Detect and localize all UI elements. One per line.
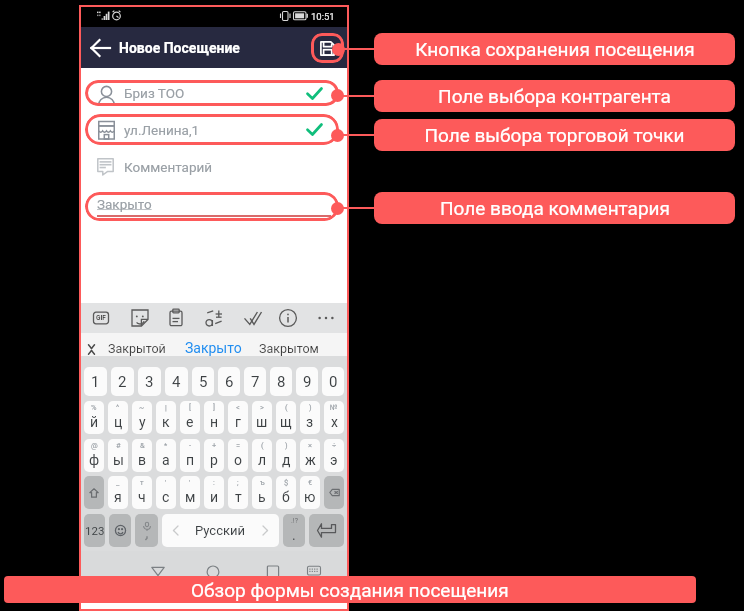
staticText: ь [258,489,266,505]
button[interactable]: Voice input [135,514,158,547]
button[interactable]: ~ [132,401,152,434]
staticText: л [258,452,267,468]
staticText: т [235,489,242,505]
button[interactable]: 7 [244,367,266,396]
button[interactable]: Home [206,566,220,580]
button[interactable]: .!? [283,514,305,547]
button[interactable]: Backspace [324,476,344,509]
staticText: 8 [277,373,286,391]
button[interactable]: More [316,308,336,328]
button[interactable]: ; [228,476,248,509]
staticText: Поле ввода комментария [440,197,670,219]
button[interactable]: Hide keyboard [307,566,321,580]
button[interactable]: Back [151,566,165,580]
button[interactable]: & [132,439,152,472]
staticText: ) [309,403,312,412]
button[interactable]: × [300,439,320,472]
button[interactable]: 3 [138,367,161,396]
button[interactable]: ) [300,401,320,434]
button[interactable]: 123 [84,514,105,547]
button[interactable]: > [252,401,272,434]
button[interactable]: ( [252,439,272,472]
button[interactable]: Spellcheck [243,308,263,328]
staticText: б [282,489,290,505]
button[interactable]: ' [156,476,176,509]
button[interactable]: _ [108,476,128,509]
staticText: ~ [139,403,145,412]
button[interactable]: Clipboard [166,308,186,328]
button[interactable]: Shift [84,476,104,509]
button[interactable]: ъ [252,476,272,509]
staticText: Закрыто [97,196,152,212]
button[interactable]: Комментарий [97,158,213,178]
button[interactable]: $ [276,476,296,509]
button[interactable]: Recents [266,566,280,580]
staticText: < [236,403,240,412]
button[interactable]: ÷ [324,439,344,472]
staticText: № [330,403,338,412]
button[interactable]: 1 [84,367,107,396]
staticText: ч [138,489,146,505]
button[interactable]: Закрыто [176,333,251,363]
staticText: д [282,452,291,468]
button[interactable]: ' [180,476,200,509]
button[interactable]: ^ [108,401,128,434]
button[interactable]: № [324,401,344,434]
button[interactable]: - [180,439,200,472]
button[interactable]: 2 [111,367,134,396]
button[interactable]: = [228,439,248,472]
staticText: т [140,478,144,487]
staticText: у [139,414,146,430]
staticText: о [234,452,242,468]
button[interactable]: Поле выбора контрагента [374,80,735,112]
button[interactable]: Русский [162,514,279,547]
button[interactable]: 8 [270,367,292,396]
button[interactable]: Save visit [311,33,344,63]
button[interactable]: Обзор формы создания посещения [4,576,696,603]
button[interactable]: ) [276,439,296,472]
staticText: ы [113,452,124,468]
button[interactable]: # [108,439,128,472]
button[interactable]: : [204,476,224,509]
button[interactable]: Закрытой [98,333,175,363]
button[interactable]: Кнопка сохранения посещения [374,33,735,65]
button[interactable]: Back [88,35,114,61]
button[interactable]: 4 [165,367,188,396]
button[interactable]: GIF [91,308,111,328]
button[interactable]: Emoji [109,514,131,547]
button[interactable]: Stickers [130,308,150,328]
staticText: .!? [291,517,298,525]
staticText: ) [285,441,288,450]
button[interactable]: Закрыто [85,192,339,221]
button[interactable]: < [228,401,248,434]
button[interactable]: | [156,401,176,434]
button[interactable]: + [204,439,224,472]
button[interactable]: ул.Ленина,1 [85,114,339,145]
button[interactable]: 5 [192,367,214,396]
staticText: ] [213,403,215,412]
staticText: ÷ [332,441,337,450]
button[interactable]: ( [276,401,296,434]
staticText: ул.Ленина,1 [124,122,200,138]
button[interactable]: % [84,401,104,434]
staticText: Закрытой [108,341,166,356]
button[interactable]: * [156,439,176,472]
staticText: ( [285,403,288,412]
button[interactable]: € [300,476,320,509]
button[interactable]: ] [204,401,224,434]
button[interactable]: Поле ввода комментария [374,192,735,224]
button[interactable]: Enter [309,514,344,547]
button[interactable]: Translate [204,308,224,328]
button[interactable]: 9 [296,367,318,396]
staticText: 5 [199,373,208,391]
button[interactable]: 0 [322,367,344,396]
button[interactable]: Поле выбора торговой точки [374,119,735,151]
button[interactable]: Закрытом [250,333,328,363]
button[interactable]: т [132,476,152,509]
button[interactable]: Бриз ТОО [85,80,339,106]
button[interactable]: Info [278,308,298,328]
button[interactable]: @ [84,439,104,472]
button[interactable]: [ [180,401,200,434]
staticText: * [164,441,168,450]
button[interactable]: 6 [218,367,240,396]
